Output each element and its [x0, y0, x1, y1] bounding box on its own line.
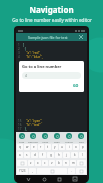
staticText: "b": "teal"	[23, 123, 41, 127]
button[interactable]: x	[35, 160, 41, 166]
staticText: "a": "red",	[23, 51, 41, 55]
button[interactable]: c	[42, 160, 48, 166]
button[interactable]: Find	[75, 133, 87, 143]
staticText: w	[26, 145, 29, 149]
staticText: i	[69, 145, 70, 149]
button[interactable]: Back	[24, 175, 32, 183]
button[interactable]: 4	[22, 72, 81, 79]
staticText: [	[23, 43, 25, 47]
staticText: f	[42, 153, 44, 157]
staticText: {	[23, 47, 26, 51]
staticText: b	[58, 161, 60, 165]
staticText: e	[33, 145, 35, 149]
button[interactable]: f	[39, 152, 46, 158]
staticText: Describe	[28, 140, 38, 143]
staticText: y	[54, 145, 56, 149]
staticText: 4	[25, 73, 28, 78]
staticText: 3	[18, 51, 20, 55]
staticText: h	[58, 153, 60, 157]
button[interactable]: .	[68, 168, 75, 174]
button[interactable]: Key	[77, 160, 86, 166]
button[interactable]: GO	[71, 82, 81, 89]
button[interactable]: Redo	[51, 133, 63, 143]
button[interactable]: Menu	[78, 34, 84, 40]
staticText: 2	[18, 47, 20, 51]
button[interactable]: ,	[29, 168, 36, 174]
staticText: Find	[79, 140, 84, 143]
button[interactable]: Describe	[27, 133, 39, 143]
button[interactable]: w	[24, 144, 30, 150]
button[interactable]: l	[79, 152, 86, 158]
button[interactable]: r	[38, 144, 44, 150]
staticText: GO	[73, 83, 79, 88]
staticText: .	[71, 169, 72, 173]
staticText: v	[51, 161, 53, 165]
button[interactable]: Undo	[39, 133, 51, 143]
button[interactable]: Sample json file for test	[16, 33, 87, 41]
staticText: a	[19, 153, 21, 157]
button[interactable]: b	[56, 160, 62, 166]
staticText: s	[26, 153, 28, 157]
button[interactable]: Home	[40, 175, 48, 183]
button[interactable]: e	[31, 144, 37, 150]
staticText: "b": "blue",	[23, 55, 43, 59]
staticText: Sample json file for test	[28, 35, 68, 40]
staticText: },	[23, 127, 27, 131]
button[interactable]: Keyboard	[71, 175, 79, 183]
staticText: 15	[18, 119, 22, 123]
button[interactable]: Key	[17, 160, 27, 166]
button[interactable]: Save	[16, 133, 27, 143]
staticText: 17	[18, 127, 22, 131]
button[interactable]: p	[80, 144, 86, 150]
button[interactable]: d	[31, 152, 38, 158]
button[interactable]: u	[59, 144, 65, 150]
staticText: x	[37, 161, 39, 165]
button[interactable]: Key	[76, 168, 86, 174]
staticText: d	[34, 153, 36, 157]
button[interactable]: h	[55, 152, 62, 158]
button[interactable]: k	[71, 152, 78, 158]
button[interactable]: z	[28, 160, 34, 166]
staticText: Go to a line number	[22, 64, 62, 69]
staticText: j	[66, 153, 67, 157]
staticText: Save	[19, 140, 25, 143]
button[interactable]: n	[63, 160, 69, 166]
staticText: q	[19, 145, 21, 149]
staticText: 1	[18, 43, 20, 47]
staticText: u	[61, 145, 63, 149]
button[interactable]: g	[47, 152, 54, 158]
staticText: 16	[18, 123, 22, 127]
staticText: o	[75, 145, 77, 149]
button[interactable]: y	[52, 144, 58, 150]
staticText: Undo	[42, 140, 49, 143]
staticText: Navigation	[29, 4, 74, 15]
staticText: c	[44, 161, 46, 165]
button[interactable]: Theme	[63, 133, 75, 143]
button[interactable]: m	[70, 160, 76, 166]
staticText: g	[50, 153, 52, 157]
button[interactable]: v	[49, 160, 55, 166]
button[interactable]: o	[73, 144, 79, 150]
staticText: Redo	[54, 140, 60, 143]
staticText: "a": "cyan",	[23, 119, 43, 123]
button[interactable]: Key	[37, 168, 67, 174]
staticText: p	[82, 145, 84, 149]
staticText: t	[47, 145, 49, 149]
staticText: m	[72, 161, 75, 165]
staticText: ,	[32, 169, 33, 173]
staticText: z	[30, 161, 32, 165]
staticText: Theme	[65, 140, 73, 143]
button[interactable]: t	[45, 144, 51, 150]
staticText: ?123	[19, 169, 26, 173]
button[interactable]: i	[66, 144, 72, 150]
staticText: 4	[18, 55, 20, 59]
button[interactable]: a	[17, 152, 23, 158]
button[interactable]: Recents	[55, 175, 63, 183]
staticText: r	[40, 145, 42, 149]
button[interactable]: s	[24, 152, 30, 158]
staticText: l	[82, 153, 83, 157]
button[interactable]: j	[63, 152, 70, 158]
staticText: k	[74, 153, 76, 157]
button[interactable]: q	[17, 144, 23, 150]
button[interactable]: ?123	[17, 168, 28, 174]
